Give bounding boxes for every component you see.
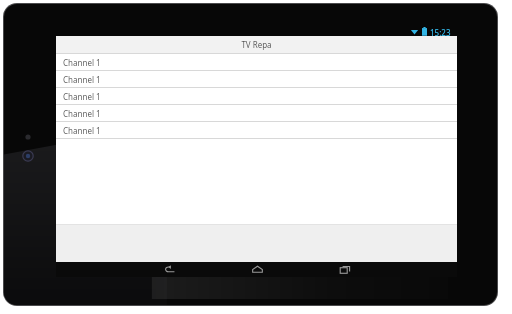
staticText: Channel 1 [63,108,101,119]
button[interactable]: Channel 1 [56,88,457,105]
button[interactable]: Channel 1 [56,54,457,71]
staticText: Channel 1 [63,57,101,68]
staticText: Channel 1 [63,74,101,85]
staticText: Channel 1 [63,91,101,102]
button[interactable]: Home [234,262,280,277]
button[interactable]: Channel 1 [56,105,457,122]
button[interactable]: Back [146,262,192,277]
button[interactable]: Channel 1 [56,71,457,88]
staticText: 15:23 [430,27,451,36]
button[interactable]: Recent apps [322,262,368,277]
button[interactable]: Channel 1 [56,122,457,139]
staticText: Channel 1 [63,125,101,136]
staticText: TV Repa [241,39,272,50]
